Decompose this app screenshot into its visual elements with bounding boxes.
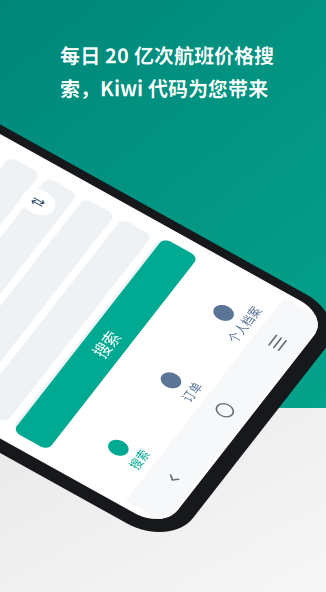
staticText: 每日 20 亿次航班价格搜	[60, 40, 274, 69]
staticText: 索，Kiwi 代码为您带来	[60, 73, 268, 102]
